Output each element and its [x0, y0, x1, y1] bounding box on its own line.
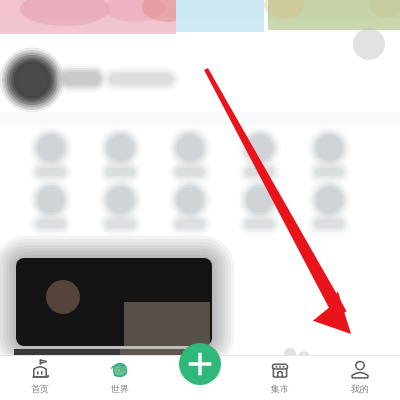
- staticText: 世界: [111, 383, 129, 394]
- staticText: 首页: [31, 383, 49, 394]
- button[interactable]: 首页: [0, 355, 80, 400]
- button[interactable]: 世界: [80, 355, 160, 400]
- button[interactable]: 集市: [240, 355, 320, 400]
- button[interactable]: Add: [179, 343, 221, 385]
- staticText: 集市: [271, 383, 289, 394]
- staticText: 我的: [351, 383, 369, 394]
- button[interactable]: 我的: [320, 355, 400, 400]
